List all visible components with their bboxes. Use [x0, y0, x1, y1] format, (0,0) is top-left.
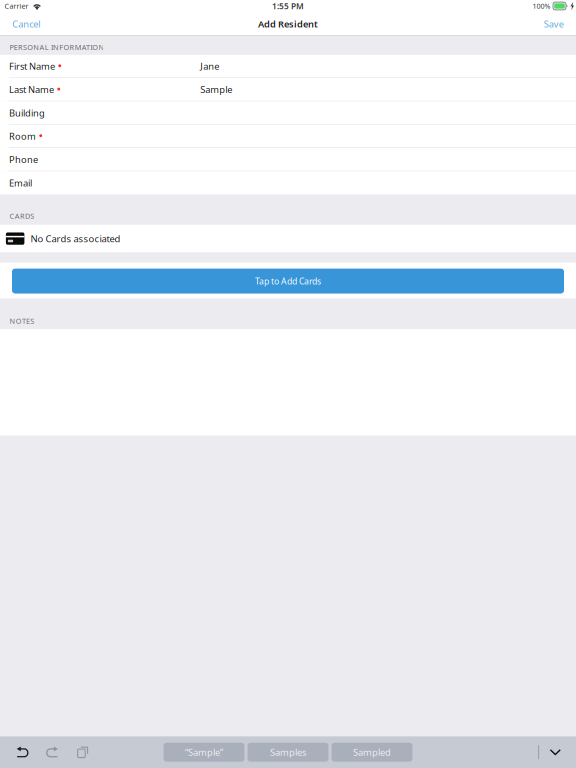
staticText: Building — [9, 107, 45, 119]
button[interactable]: Last Name — [0, 78, 576, 101]
staticText: Samples — [270, 746, 306, 758]
staticText: Add Resident — [258, 18, 318, 30]
button[interactable]: Tap to Add Cards — [0, 263, 576, 299]
staticText: PERSONAL INFORMATION — [10, 42, 104, 52]
staticText: First Name — [9, 60, 55, 72]
staticText: Save — [544, 18, 564, 30]
staticText: Sampled — [353, 746, 391, 758]
staticText: Carrier — [5, 1, 29, 11]
staticText: Last Name — [9, 83, 54, 96]
button[interactable]: Sampled — [331, 743, 412, 762]
staticText: “Sample” — [185, 746, 223, 758]
staticText: CARDS — [10, 211, 34, 221]
staticText: Sample — [200, 83, 232, 96]
button[interactable]: Phone — [0, 148, 576, 171]
staticText: Email — [9, 177, 32, 189]
staticText: No Cards associated — [30, 232, 120, 245]
staticText: NOTES — [10, 316, 34, 326]
button[interactable]: Building — [0, 101, 576, 125]
button[interactable]: Room — [0, 125, 576, 148]
button[interactable]: Hide keyboard — [539, 736, 576, 768]
button[interactable]: Save — [535, 12, 576, 36]
button[interactable]: Samples — [247, 743, 328, 762]
staticText: 100% — [532, 1, 550, 11]
button[interactable]: Cancel — [0, 12, 49, 36]
staticText: Tap to Add Cards — [255, 275, 321, 287]
staticText: Phone — [9, 153, 38, 166]
staticText: 1:55 PM — [272, 0, 304, 11]
button[interactable]: Undo — [0, 736, 46, 768]
staticText: Cancel — [12, 18, 40, 30]
staticText: Room — [9, 130, 36, 142]
button[interactable]: “Sample” — [163, 743, 244, 762]
staticText: Jane — [200, 60, 219, 72]
button[interactable]: First Name — [0, 55, 576, 78]
button[interactable]: Paste — [78, 736, 102, 768]
button[interactable]: Redo — [46, 736, 78, 768]
button[interactable]: Email — [0, 171, 576, 195]
button[interactable]: No Cards associated — [0, 225, 576, 252]
